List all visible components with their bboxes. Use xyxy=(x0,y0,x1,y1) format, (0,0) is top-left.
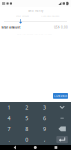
staticText: 0 xyxy=(25,136,28,143)
button[interactable]: 2 xyxy=(18,102,36,113)
button[interactable]: Backspace xyxy=(53,123,71,134)
button[interactable]: 8 xyxy=(18,123,36,134)
button[interactable]: . xyxy=(0,134,18,145)
staticText: 8 xyxy=(25,125,28,132)
button[interactable]: 7 xyxy=(0,123,18,134)
staticText: Send money xyxy=(28,9,43,13)
staticText: 1 xyxy=(7,104,10,111)
button[interactable]: 4 xyxy=(0,113,18,124)
staticText: 2 xyxy=(25,104,28,111)
button[interactable]: 9 xyxy=(35,123,53,134)
button[interactable]: 1 xyxy=(0,102,18,113)
staticText: 4 xyxy=(7,114,10,122)
button[interactable]: CONTINUE xyxy=(53,93,68,99)
button[interactable]: , xyxy=(35,134,53,145)
button[interactable]: 6 xyxy=(35,113,53,124)
staticText: , xyxy=(44,136,45,143)
button[interactable]: Back xyxy=(10,145,20,149)
button[interactable]: 0 xyxy=(18,134,36,145)
staticText: US$ 0.00 xyxy=(54,26,68,29)
staticText: 6 xyxy=(43,114,46,122)
staticText: 3 xyxy=(43,104,46,111)
button[interactable]: Recents xyxy=(50,146,61,149)
staticText: 7 xyxy=(7,125,10,132)
staticText: . xyxy=(8,136,9,143)
button[interactable]: 3 xyxy=(35,102,53,113)
button[interactable]: Home xyxy=(30,146,41,149)
button[interactable]: Hide keyboard xyxy=(53,102,71,113)
staticText: 9 xyxy=(43,125,46,132)
staticText: 5 xyxy=(25,114,28,122)
staticText: Available balance xyxy=(41,14,59,17)
staticText: CONTINUE xyxy=(54,94,67,98)
staticText: Total amount xyxy=(1,26,20,29)
button[interactable]: 5 xyxy=(18,113,36,124)
staticText: Enter amount xyxy=(16,14,29,17)
button[interactable]: Dash xyxy=(53,113,71,124)
button[interactable]: Enter xyxy=(53,134,71,145)
